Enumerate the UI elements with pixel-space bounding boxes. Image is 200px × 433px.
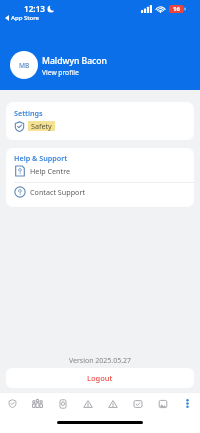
button[interactable]: More options: [175, 393, 200, 414]
staticText: MB: [19, 61, 30, 70]
staticText: Logout: [87, 373, 113, 383]
staticText: 16: [173, 5, 180, 13]
staticText: Contact Support: [30, 187, 86, 197]
button[interactable]: Help Centre: [6, 162, 194, 180]
button[interactable]: Media: [150, 393, 175, 414]
button[interactable]: Safety: [0, 393, 25, 414]
button[interactable]: Logout: [6, 368, 194, 388]
staticText: Maldwyn Bacon: [42, 55, 107, 67]
staticText: Help & Support: [14, 153, 68, 163]
staticText: App Store: [11, 14, 40, 22]
button[interactable]: Contact Support: [6, 183, 194, 201]
staticText: Version 2025.05.27: [0, 356, 200, 366]
button[interactable]: Community: [25, 393, 50, 414]
staticText: Safety: [31, 121, 52, 131]
staticText: Settings: [14, 108, 43, 118]
staticText: Help Centre: [30, 166, 71, 176]
staticText: View profile: [42, 68, 79, 77]
button[interactable]: Tasks: [125, 393, 150, 414]
button[interactable]: MB: [0, 46, 200, 86]
button[interactable]: Hazards: [100, 393, 125, 414]
button[interactable]: Check in: [50, 393, 75, 414]
staticText: 12:13: [24, 3, 45, 14]
button[interactable]: Safety: [6, 118, 194, 134]
button[interactable]: App Store: [4, 14, 41, 22]
button[interactable]: Alerts: [75, 393, 100, 414]
